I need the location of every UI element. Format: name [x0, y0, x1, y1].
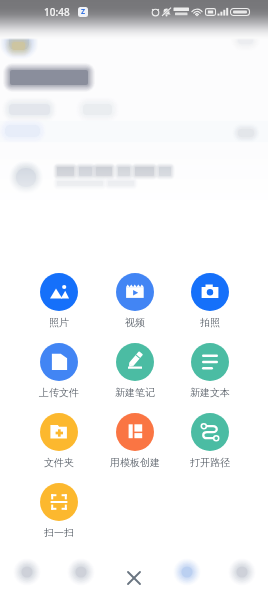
button[interactable]: 用模板创建: [97, 413, 172, 469]
button[interactable]: 新建文本: [172, 343, 247, 399]
button[interactable]: 拍照: [172, 273, 247, 329]
staticText: 新建文本: [190, 386, 230, 399]
button[interactable]: 视频: [97, 273, 172, 329]
staticText: 打开路径: [190, 456, 230, 469]
button[interactable]: Close: [114, 558, 154, 598]
staticText: 用模板创建: [110, 456, 160, 469]
staticText: 视频: [125, 316, 145, 329]
staticText: Z: [81, 7, 86, 17]
button[interactable]: 上传文件: [21, 343, 97, 399]
staticText: 10:48: [44, 5, 70, 19]
button[interactable]: 扫一扫: [21, 483, 97, 539]
staticText: 文件夹: [44, 456, 74, 469]
button[interactable]: 新建笔记: [97, 343, 172, 399]
staticText: 拍照: [200, 316, 220, 329]
staticText: 上传文件: [39, 386, 79, 399]
button[interactable]: 文件夹: [21, 413, 97, 469]
staticText: 新建笔记: [115, 386, 155, 399]
staticText: 扫一扫: [44, 526, 74, 539]
button[interactable]: 打开路径: [172, 413, 247, 469]
button[interactable]: 照片: [21, 273, 97, 329]
staticText: 照片: [49, 316, 69, 329]
